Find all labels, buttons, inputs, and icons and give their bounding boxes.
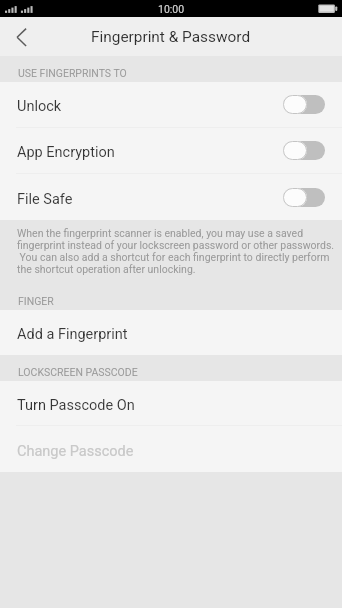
staticText: Unlock [17, 98, 284, 115]
staticText: 10:00 [158, 3, 185, 15]
staticText: Fingerprint & Password [91, 28, 251, 46]
button[interactable]: Add a Fingerprint [0, 310, 342, 355]
staticText: App Encryption [17, 144, 284, 161]
button[interactable]: File Safe [0, 174, 342, 220]
button[interactable]: Turn Passcode On [0, 381, 342, 426]
staticText: When the fingerprint scanner is enabled,… [17, 228, 335, 276]
staticText: FINGER [18, 295, 54, 307]
button[interactable]: Back [0, 17, 40, 56]
staticText: Turn Passcode On [17, 397, 135, 414]
button[interactable]: App Encryption [0, 128, 342, 174]
staticText: Add a Fingerprint [17, 326, 128, 343]
staticText: File Safe [17, 191, 284, 208]
staticText: USE FINGERPRINTS TO [18, 67, 127, 79]
staticText: LOCKSCREEN PASSCODE [18, 366, 138, 378]
staticText: Change Passcode [17, 443, 134, 460]
button[interactable]: Change Passcode [0, 426, 342, 472]
button[interactable]: Unlock [0, 82, 342, 128]
